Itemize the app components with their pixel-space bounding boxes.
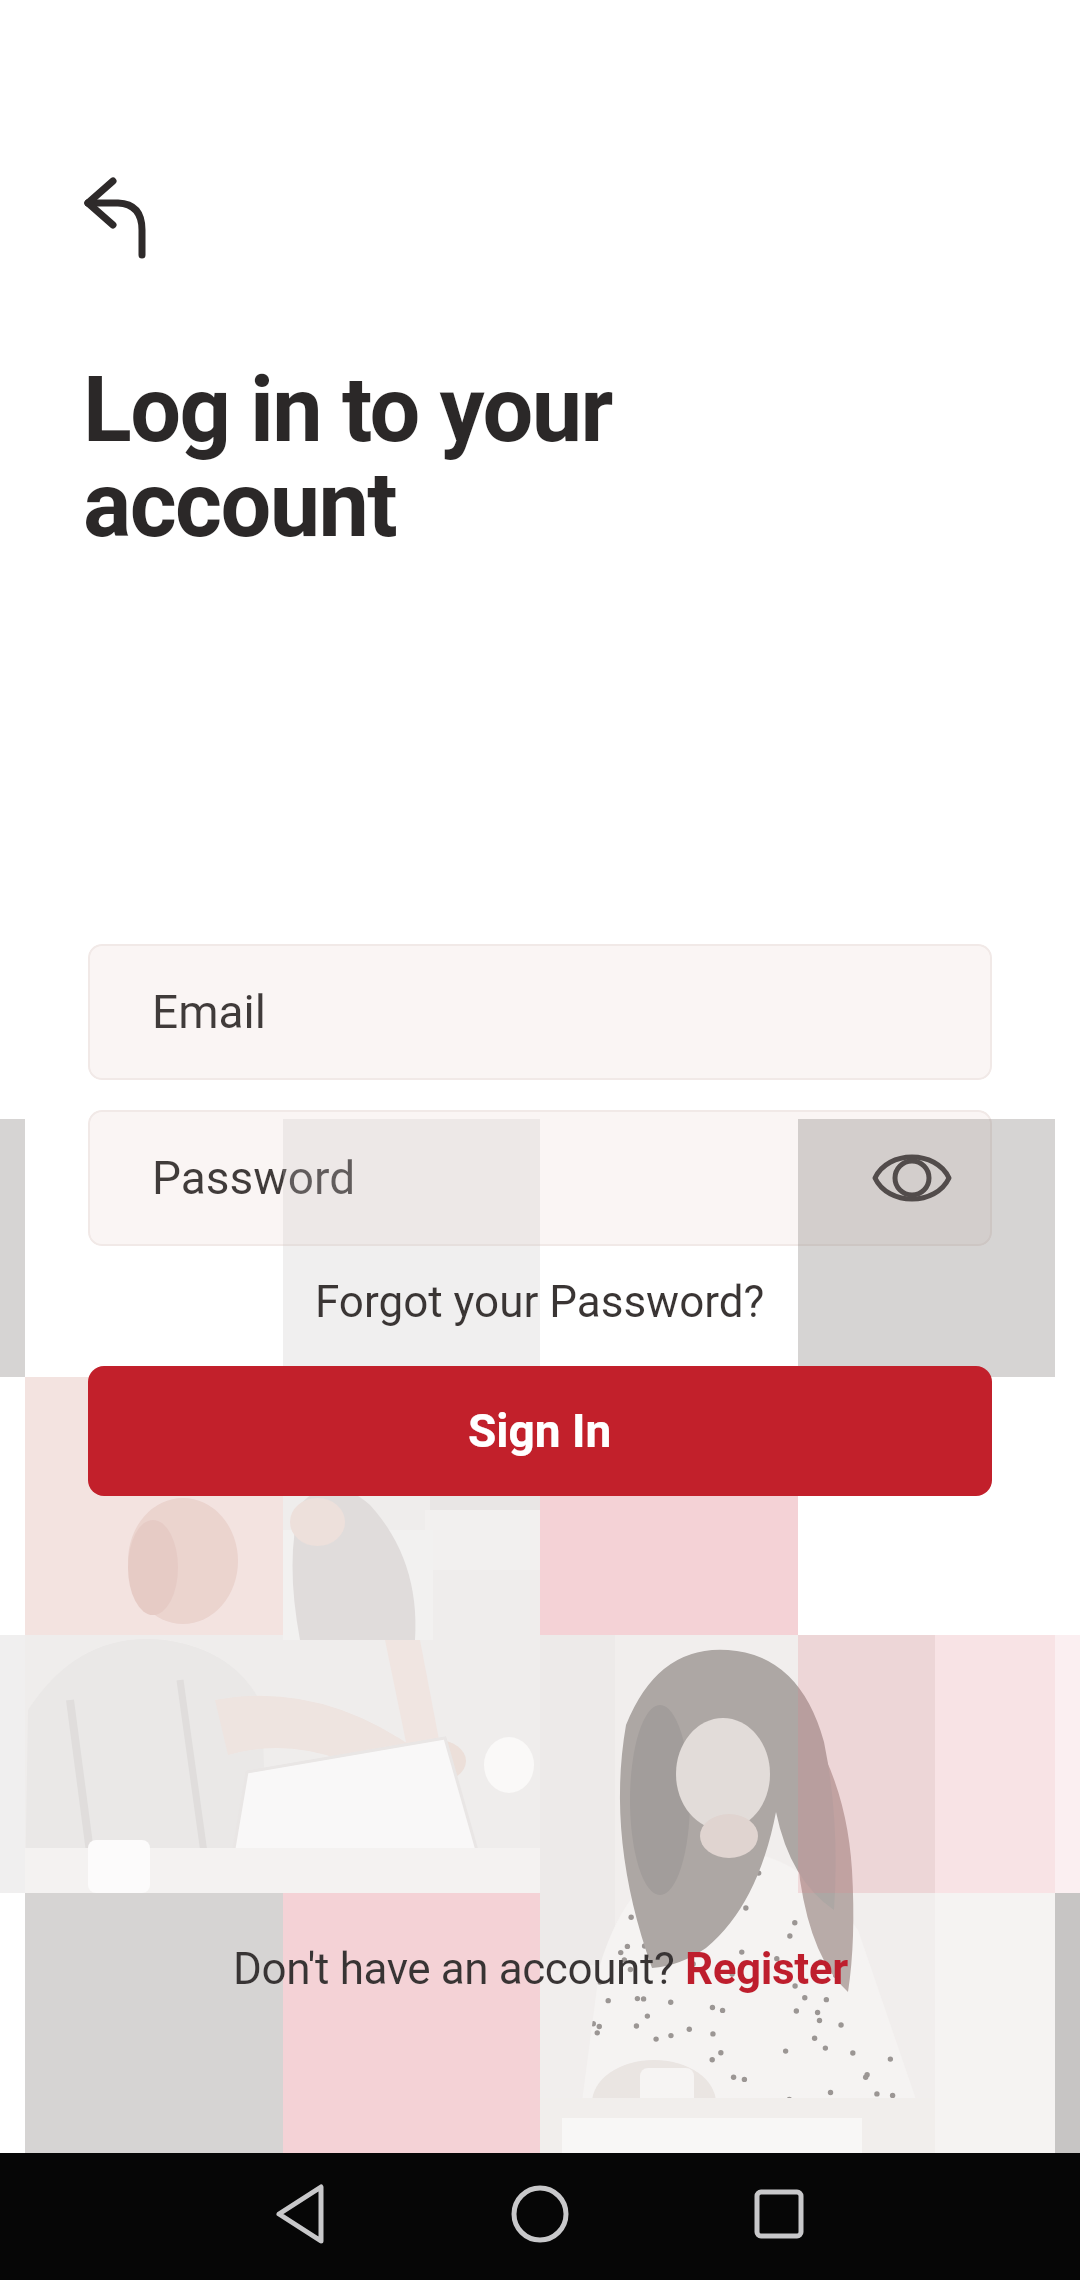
staticText: Sign In [468, 1404, 612, 1458]
button[interactable]: Forgot your Password? [303, 1270, 777, 1334]
staticText: Forgot your Password? [315, 1276, 765, 1328]
staticText: Register [685, 1943, 848, 1995]
staticText: Don't have an account? [233, 1943, 685, 1995]
button[interactable] [62, 158, 172, 278]
button[interactable]: Don't have an account? [233, 1943, 848, 1995]
staticText: Password [152, 1151, 356, 1205]
button[interactable]: Password [88, 1110, 992, 1246]
button[interactable]: Email [88, 944, 992, 1080]
staticText: Log in to your account [83, 358, 612, 558]
staticText: Email [152, 985, 266, 1039]
button[interactable]: Sign In [88, 1366, 992, 1496]
button[interactable] [874, 1148, 950, 1208]
